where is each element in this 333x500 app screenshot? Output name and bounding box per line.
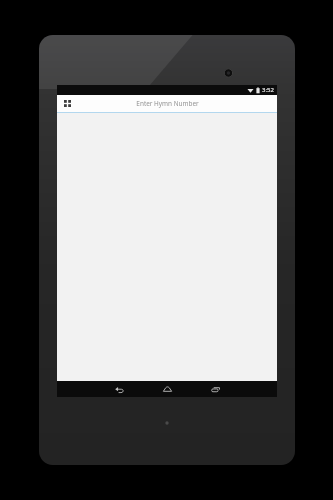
button[interactable]: Open hymn grid [61, 97, 74, 110]
staticText: 3:52 [262, 86, 274, 94]
button[interactable]: Recent apps [204, 381, 226, 397]
button[interactable]: Home [156, 381, 178, 397]
button[interactable]: Enter Hymn Number [92, 95, 242, 112]
staticText: Enter Hymn Number [136, 99, 199, 108]
button[interactable]: Back [108, 381, 130, 397]
